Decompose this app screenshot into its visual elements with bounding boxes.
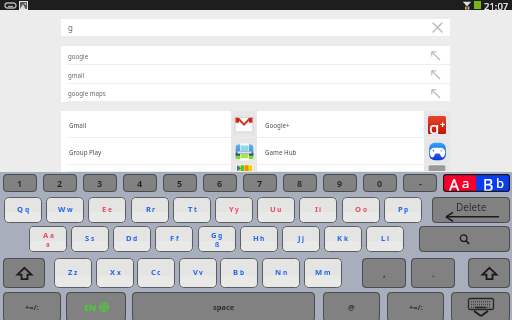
button[interactable]: L xyxy=(366,226,404,252)
staticText: +=/: xyxy=(25,302,39,312)
button[interactable]: 3 xyxy=(83,174,117,192)
button[interactable]: D xyxy=(113,226,151,252)
staticText: F xyxy=(170,233,175,243)
button[interactable]: P xyxy=(384,197,422,223)
button[interactable]: Gmail xyxy=(61,111,257,138)
staticText: P xyxy=(398,204,403,214)
staticText: ß xyxy=(215,240,220,248)
staticText: q xyxy=(25,205,30,214)
button[interactable]: 7 xyxy=(243,174,277,192)
button[interactable]: , xyxy=(362,258,406,288)
staticText: 8 xyxy=(297,177,303,189)
staticText: H xyxy=(253,233,259,243)
staticText: 1 xyxy=(17,177,23,189)
button[interactable]: O xyxy=(342,197,380,223)
button[interactable]: 9 xyxy=(323,174,357,192)
button[interactable]: B xyxy=(220,258,258,288)
staticText: g xyxy=(68,22,73,33)
button[interactable]: gmail xyxy=(61,65,450,84)
button[interactable]: Z xyxy=(54,258,92,288)
button[interactable]: G xyxy=(198,226,236,252)
staticText: . xyxy=(432,267,435,279)
button[interactable]: Hide keyboard xyxy=(451,292,510,320)
button[interactable]: A xyxy=(29,226,67,252)
button[interactable]: E xyxy=(88,197,126,223)
button[interactable]: N xyxy=(262,258,300,288)
other: Change language xyxy=(84,301,109,313)
button[interactable]: Delete xyxy=(432,197,510,223)
button[interactable]: K xyxy=(324,226,362,252)
button[interactable]: Google+ xyxy=(257,111,450,138)
other: Hide keyboard xyxy=(468,298,494,316)
button[interactable] xyxy=(61,165,257,172)
button[interactable]: 0 xyxy=(363,174,397,192)
staticText: google maps xyxy=(68,89,106,97)
button[interactable]: Shift xyxy=(468,258,510,288)
button[interactable]: H xyxy=(240,226,278,252)
button[interactable]: 6 xyxy=(203,174,237,192)
button[interactable]: google xyxy=(61,46,450,65)
button[interactable]: g xyxy=(61,19,450,36)
staticText: Delete xyxy=(456,200,487,214)
staticText: o xyxy=(363,205,368,214)
staticText: W xyxy=(58,204,66,214)
button[interactable]: +=/: xyxy=(387,292,444,320)
staticText: g xyxy=(218,231,223,240)
staticText: A xyxy=(449,174,460,192)
staticText: g xyxy=(429,116,440,134)
staticText: R xyxy=(146,204,151,214)
button[interactable]: Search xyxy=(419,226,510,252)
staticText: E xyxy=(102,204,107,214)
button[interactable]: Game Hub xyxy=(257,138,450,165)
other: Use suggestion xyxy=(431,70,440,79)
button[interactable]: T xyxy=(173,197,211,223)
button[interactable]: google maps xyxy=(61,84,450,102)
button[interactable]: 2 xyxy=(43,174,77,192)
button[interactable]: Change language xyxy=(66,292,126,320)
other: Delete xyxy=(444,200,499,221)
staticText: d xyxy=(133,234,138,243)
staticText: google xyxy=(68,52,89,60)
button[interactable]: 8 xyxy=(283,174,317,192)
button[interactable]: +=/: xyxy=(3,292,61,320)
button[interactable]: W xyxy=(46,197,84,223)
staticText: I xyxy=(315,204,318,214)
button[interactable]: R xyxy=(131,197,169,223)
staticText: @ xyxy=(348,302,355,312)
staticText: i xyxy=(319,205,321,214)
button[interactable]: - xyxy=(403,174,437,192)
button[interactable]: J xyxy=(282,226,320,252)
staticText: U xyxy=(270,204,276,214)
button[interactable]: 4 xyxy=(123,174,157,192)
staticText: 9 xyxy=(337,177,343,189)
other: Shift xyxy=(17,267,32,280)
button[interactable]: F xyxy=(155,226,193,252)
button[interactable]: U xyxy=(257,197,295,223)
button[interactable]: @ xyxy=(323,292,380,320)
staticText: 3 xyxy=(97,177,103,189)
button[interactable]: X xyxy=(96,258,134,288)
button[interactable]: Y xyxy=(215,197,253,223)
button[interactable]: V xyxy=(179,258,217,288)
button[interactable]: Change case xyxy=(443,174,510,192)
button[interactable]: M xyxy=(304,258,342,288)
button[interactable]: 5 xyxy=(163,174,197,192)
button[interactable]: Shift xyxy=(3,258,45,288)
staticText: c xyxy=(157,268,161,277)
staticText: M xyxy=(315,267,323,277)
button[interactable] xyxy=(257,165,450,172)
button[interactable]: space xyxy=(132,292,315,320)
staticText: Group Play xyxy=(69,148,102,156)
button[interactable]: 1 xyxy=(3,174,37,192)
button[interactable]: . xyxy=(411,258,455,288)
button[interactable]: Q xyxy=(4,197,42,223)
button[interactable]: Group Play xyxy=(61,138,257,165)
staticText: Game Hub xyxy=(265,148,297,156)
button[interactable]: I xyxy=(299,197,337,223)
staticText: x xyxy=(117,268,121,277)
staticText: EN xyxy=(84,301,97,313)
staticText: Y xyxy=(229,204,234,214)
button[interactable]: C xyxy=(137,258,175,288)
staticText: N xyxy=(275,267,282,277)
button[interactable]: S xyxy=(71,226,109,252)
